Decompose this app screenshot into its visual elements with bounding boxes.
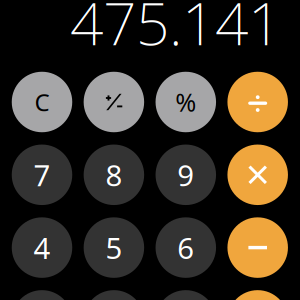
staticText: 4	[33, 228, 50, 267]
button[interactable]: Minus	[227, 217, 288, 278]
button[interactable]: 2	[84, 290, 144, 300]
staticText: 475.141	[70, 0, 281, 62]
button[interactable]: 6	[156, 217, 216, 278]
button[interactable]: 3	[156, 290, 216, 300]
staticText: 8	[105, 155, 122, 194]
button[interactable]: 7	[12, 145, 72, 205]
staticText: 6	[177, 228, 194, 267]
staticText: 5	[105, 228, 122, 267]
button[interactable]: Clear	[12, 72, 72, 132]
button[interactable]: Plus minus	[84, 72, 144, 132]
staticText: %	[175, 85, 196, 119]
button[interactable]: Percent	[156, 72, 216, 132]
button[interactable]: 8	[84, 145, 144, 205]
staticText: C	[34, 86, 49, 118]
staticText: 9	[177, 155, 194, 194]
button[interactable]: Divide	[227, 72, 288, 132]
button[interactable]: Multiply	[227, 145, 288, 205]
button[interactable]: Plus	[227, 290, 288, 300]
button[interactable]: 9	[156, 145, 216, 205]
staticText: 7	[33, 155, 50, 194]
button[interactable]: 5	[84, 217, 144, 278]
button[interactable]: 1	[12, 290, 72, 300]
button[interactable]: 4	[12, 217, 72, 278]
